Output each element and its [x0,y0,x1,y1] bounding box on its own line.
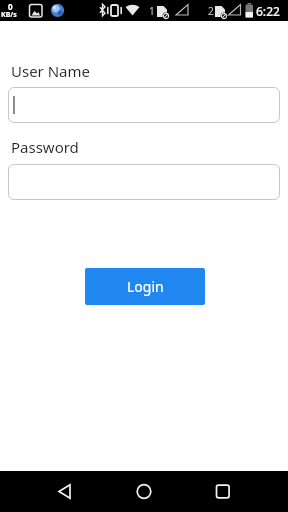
staticText: Login [127,277,164,296]
button[interactable] [112,471,176,512]
staticText: User Name [11,61,91,81]
button[interactable] [8,87,280,123]
staticText: 6:22 [256,3,280,19]
staticText: 0 [8,1,13,12]
button[interactable] [32,471,96,512]
staticText: 2 [208,4,214,18]
button[interactable] [8,164,280,200]
button[interactable]: Login [85,268,205,305]
staticText: Password [11,137,79,157]
button[interactable] [192,471,256,512]
staticText: KB/s [1,10,17,20]
staticText: 1 [149,4,155,18]
